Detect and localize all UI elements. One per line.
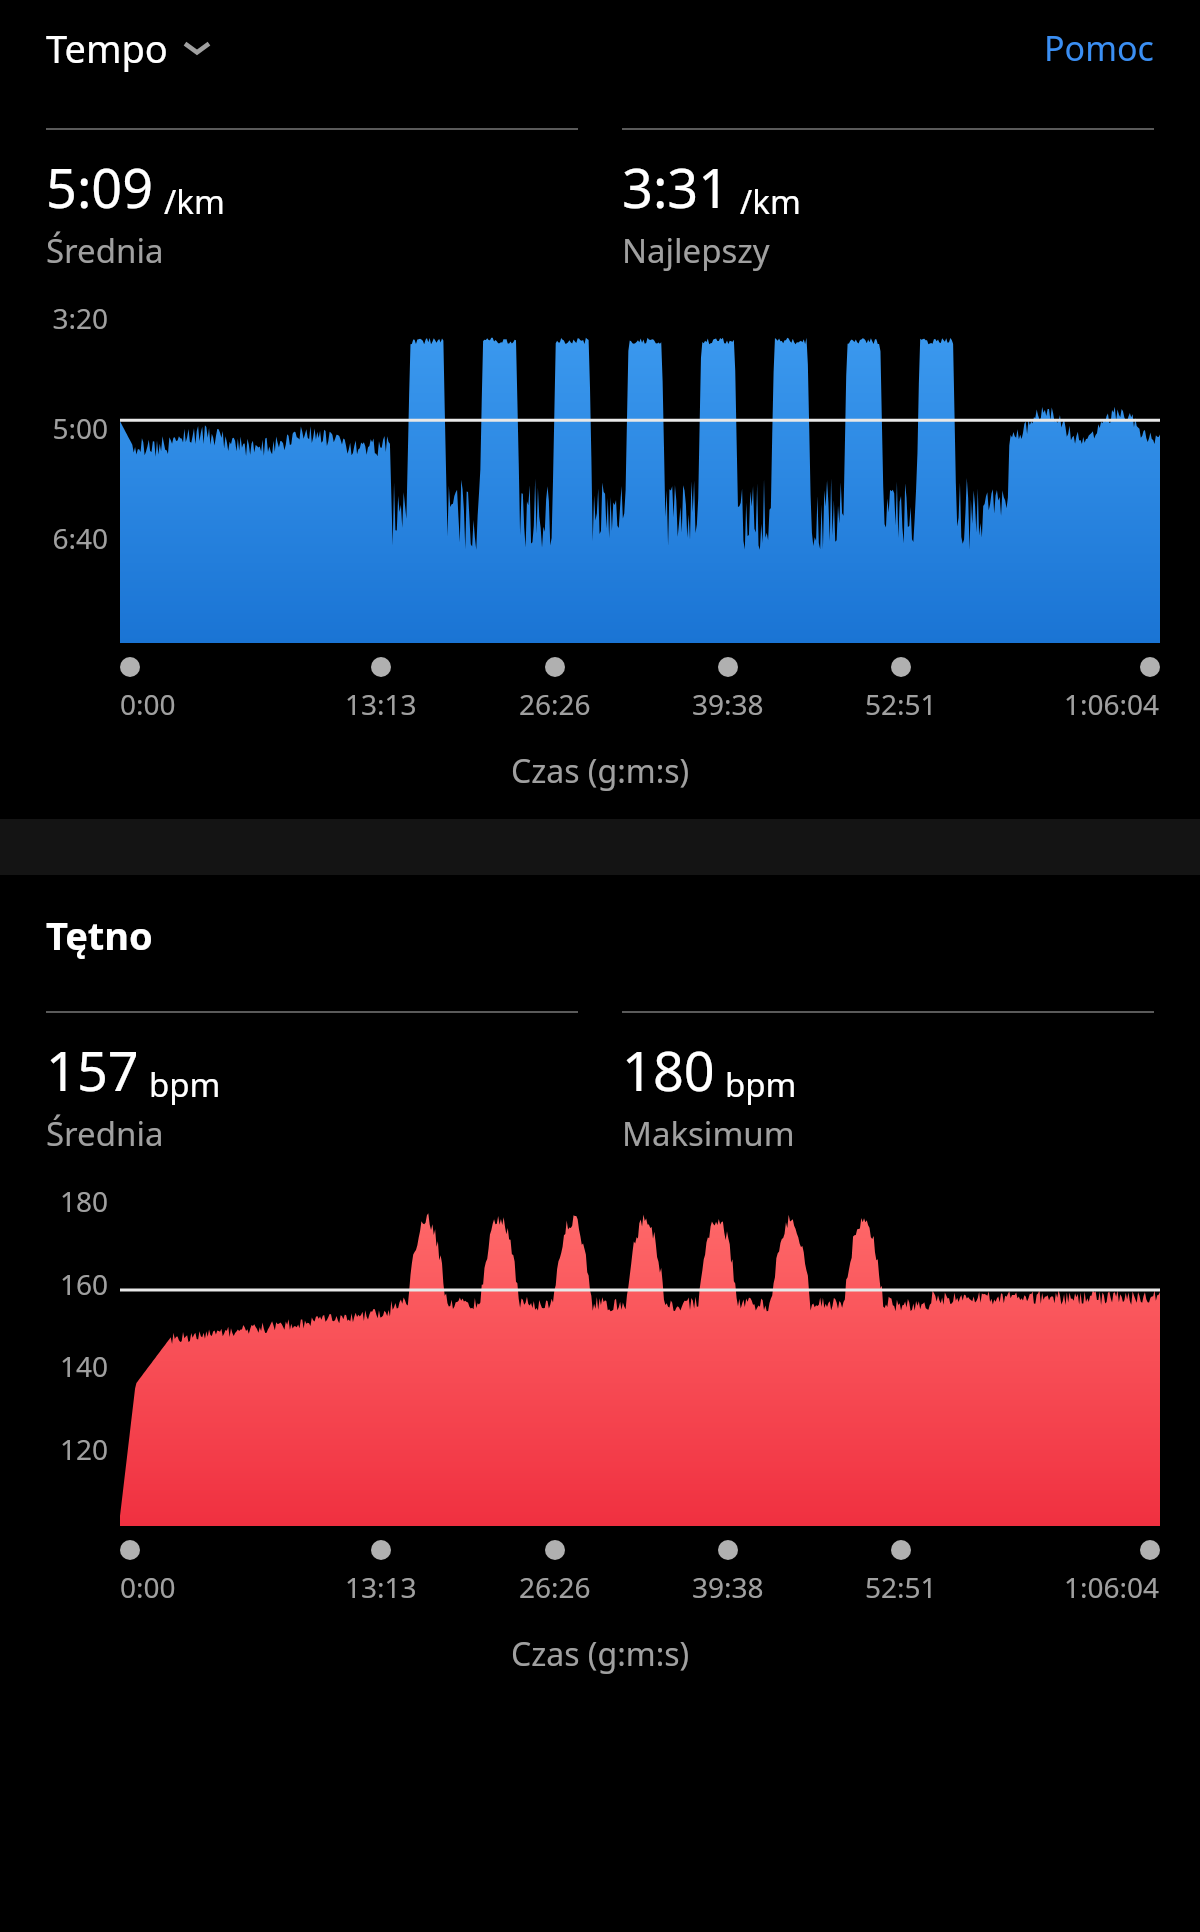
staticText: 26:26 bbox=[519, 685, 591, 723]
staticText: /km bbox=[164, 179, 225, 224]
staticText: 13:13 bbox=[345, 1568, 417, 1606]
staticText: 120 bbox=[30, 1430, 108, 1468]
staticText: /km bbox=[740, 179, 801, 224]
button[interactable]: 180 bbox=[622, 1011, 1154, 1156]
staticText: 52:51 bbox=[865, 1568, 937, 1606]
staticText: 0:00 bbox=[120, 685, 176, 723]
staticText: Czas (g:m:s) bbox=[511, 749, 690, 793]
staticText: Średnia bbox=[46, 1111, 164, 1156]
staticText: 26:26 bbox=[519, 1568, 591, 1606]
staticText: 52:51 bbox=[865, 685, 937, 723]
staticText: Tętno bbox=[46, 909, 153, 961]
button[interactable]: 3:31 bbox=[622, 128, 1154, 273]
staticText: bpm bbox=[725, 1062, 797, 1107]
staticText: Tempo bbox=[46, 22, 168, 74]
button[interactable]: Pomoc bbox=[1044, 21, 1154, 75]
staticText: 5:09 bbox=[46, 150, 154, 224]
staticText: Czas (g:m:s) bbox=[511, 1632, 690, 1676]
button[interactable]: 5:09 bbox=[46, 128, 578, 273]
staticText: 160 bbox=[30, 1265, 108, 1303]
staticText: Średnia bbox=[46, 228, 164, 273]
staticText: 3:20 bbox=[30, 299, 108, 337]
button[interactable]: 157 bbox=[46, 1011, 578, 1156]
staticText: 39:38 bbox=[692, 1568, 764, 1606]
staticText: 0:00 bbox=[120, 1568, 176, 1606]
staticText: 1:06:04 bbox=[1064, 685, 1160, 723]
staticText: Maksimum bbox=[622, 1111, 795, 1156]
staticText: 157 bbox=[46, 1033, 139, 1107]
staticText: 39:38 bbox=[692, 685, 764, 723]
staticText: 6:40 bbox=[30, 519, 108, 557]
staticText: 3:31 bbox=[622, 150, 730, 224]
staticText: 5:00 bbox=[30, 409, 108, 447]
staticText: 180 bbox=[622, 1033, 715, 1107]
staticText: 13:13 bbox=[345, 685, 417, 723]
staticText: 180 bbox=[30, 1182, 108, 1220]
staticText: Pomoc bbox=[1044, 25, 1154, 71]
staticText: bpm bbox=[149, 1062, 221, 1107]
button[interactable]: Tempo bbox=[46, 18, 212, 78]
staticText: Najlepszy bbox=[622, 228, 770, 273]
staticText: 140 bbox=[30, 1347, 108, 1385]
staticText: 1:06:04 bbox=[1064, 1568, 1160, 1606]
